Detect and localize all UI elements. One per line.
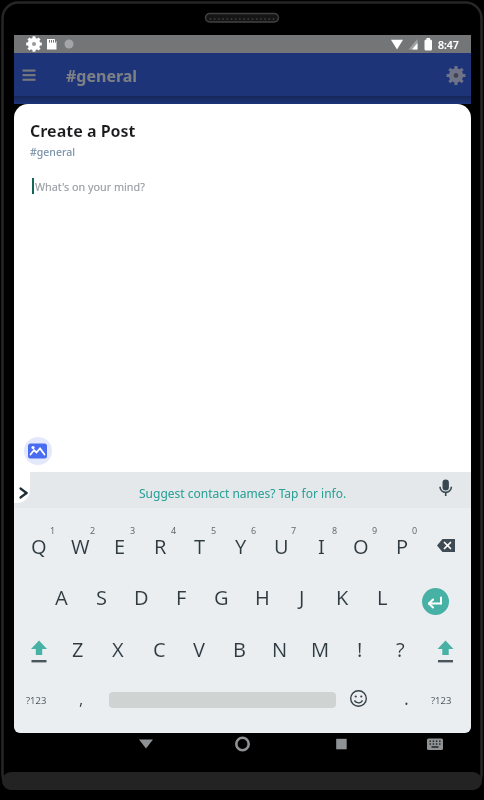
button[interactable]: H xyxy=(202,577,322,617)
staticText: G xyxy=(214,584,229,611)
staticText: 7 xyxy=(291,524,297,536)
staticText: #general xyxy=(66,65,138,87)
button[interactable] xyxy=(442,61,470,89)
staticText: Z xyxy=(72,636,84,663)
button[interactable]: W xyxy=(20,526,140,566)
button[interactable] xyxy=(132,730,160,758)
button[interactable]: R xyxy=(100,526,220,566)
staticText: 8:47 xyxy=(438,38,459,52)
button[interactable]: U xyxy=(221,526,341,566)
button[interactable] xyxy=(421,730,449,758)
button[interactable]: ?123 xyxy=(381,680,471,720)
staticText: Create a Post xyxy=(30,120,136,142)
staticText: 2 xyxy=(90,524,96,536)
button[interactable] xyxy=(228,730,256,758)
staticText: Q xyxy=(31,533,47,560)
button[interactable] xyxy=(432,478,460,506)
staticText: , xyxy=(79,688,84,710)
staticText: 3 xyxy=(130,524,136,536)
button[interactable]: S xyxy=(41,577,161,617)
button[interactable] xyxy=(431,533,461,559)
button[interactable]: T xyxy=(140,526,260,566)
staticText: 9 xyxy=(372,524,378,536)
staticText: I xyxy=(318,533,325,560)
button[interactable]: . xyxy=(346,678,466,718)
staticText: O xyxy=(353,533,369,560)
staticText: 8 xyxy=(332,524,338,536)
staticText: ! xyxy=(357,636,363,663)
staticText: C xyxy=(153,636,166,663)
staticText: 4 xyxy=(171,524,177,536)
staticText: S xyxy=(96,584,107,611)
button[interactable]: ? xyxy=(340,629,460,669)
staticText: K xyxy=(336,584,349,611)
button[interactable]: Suggest contact names? Tap for info. xyxy=(73,473,413,513)
button[interactable] xyxy=(327,730,355,758)
staticText: What's on your mind? xyxy=(35,179,145,194)
button[interactable]: Z xyxy=(18,629,138,669)
staticText: V xyxy=(193,636,205,663)
staticText: #general xyxy=(30,145,76,159)
button[interactable]: O xyxy=(301,526,421,566)
staticText: U xyxy=(274,533,289,560)
staticText: P xyxy=(396,533,409,560)
staticText: W xyxy=(71,533,90,560)
button[interactable]: , xyxy=(21,679,141,719)
button[interactable]: X xyxy=(58,629,178,669)
staticText: B xyxy=(233,636,246,663)
staticText: ?123 xyxy=(26,694,47,707)
staticText: 6 xyxy=(251,524,257,536)
button[interactable] xyxy=(422,588,449,615)
staticText: A xyxy=(55,584,68,611)
button[interactable] xyxy=(24,437,52,465)
staticText: 5 xyxy=(211,524,217,536)
button[interactable]: V xyxy=(139,629,259,669)
button[interactable]: E xyxy=(60,526,180,566)
staticText: 1 xyxy=(50,524,56,536)
staticText: H xyxy=(255,584,270,611)
staticText: T xyxy=(194,533,206,560)
button[interactable]: P xyxy=(342,526,462,566)
staticText: R xyxy=(154,533,167,560)
button[interactable] xyxy=(16,60,46,90)
button[interactable]: K xyxy=(282,577,402,617)
staticText: D xyxy=(134,584,149,611)
button[interactable]: J xyxy=(242,577,362,617)
button[interactable] xyxy=(348,688,369,709)
button[interactable] xyxy=(25,636,53,663)
button[interactable]: Y xyxy=(181,526,301,566)
button[interactable]: G xyxy=(161,577,281,617)
button[interactable]: ! xyxy=(300,629,420,669)
staticText: L xyxy=(377,584,388,611)
staticText: M xyxy=(311,636,330,663)
button[interactable]: L xyxy=(322,577,442,617)
button[interactable]: ?123 xyxy=(14,680,96,720)
staticText: N xyxy=(272,636,288,663)
button[interactable] xyxy=(431,636,459,663)
button[interactable]: B xyxy=(179,629,299,669)
staticText: E xyxy=(114,533,126,560)
button[interactable]: D xyxy=(81,577,201,617)
staticText: ? xyxy=(396,636,405,663)
staticText: X xyxy=(112,636,124,663)
button[interactable]: I xyxy=(261,526,381,566)
staticText: Suggest contact names? Tap for info. xyxy=(139,485,347,501)
button[interactable]: C xyxy=(99,629,219,669)
button[interactable]: A xyxy=(14,577,121,617)
staticText: J xyxy=(299,584,305,611)
staticText: ?123 xyxy=(431,694,452,707)
staticText: . xyxy=(404,686,409,711)
button[interactable] xyxy=(14,472,471,508)
button[interactable]: Q xyxy=(14,526,99,566)
staticText: F xyxy=(176,584,187,611)
button[interactable]: F xyxy=(121,577,241,617)
button[interactable]: M xyxy=(260,629,380,669)
staticText: 0 xyxy=(412,524,418,536)
button[interactable] xyxy=(14,472,30,503)
staticText: Y xyxy=(235,533,247,560)
button[interactable]: N xyxy=(220,629,340,669)
